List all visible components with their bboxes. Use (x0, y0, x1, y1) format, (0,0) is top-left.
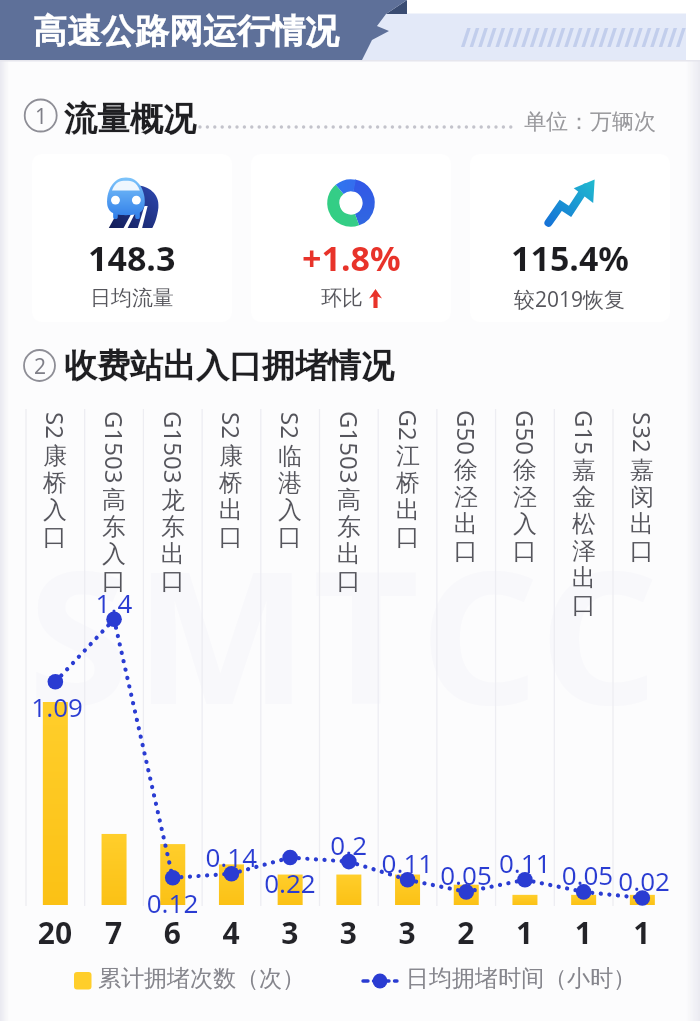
staticText: S2 (274, 412, 307, 439)
staticText: 口 (278, 522, 302, 549)
staticText: 出 (396, 495, 420, 522)
staticText: 日均流量 (90, 285, 174, 311)
button[interactable]: 148.3 (32, 154, 232, 322)
staticText: 较2019恢复 (514, 285, 626, 314)
staticText: 泾 (513, 482, 537, 509)
staticText: 桥 (396, 468, 420, 495)
staticText: 口 (572, 590, 596, 617)
staticText: 泾 (454, 482, 478, 509)
staticText: 港 (278, 468, 302, 495)
staticText: 临 (278, 441, 302, 468)
button[interactable]: 115.4% (470, 154, 670, 322)
staticText: 入 (278, 495, 302, 522)
staticText: 出 (454, 509, 478, 536)
staticText: 金 (572, 482, 596, 509)
staticText: 康 (219, 441, 243, 468)
staticText: 龙 (161, 485, 185, 512)
staticText: 高 (102, 485, 126, 512)
staticText: 东 (337, 512, 361, 539)
staticText: 115.4% (511, 235, 630, 281)
staticText: 出 (572, 563, 596, 590)
staticText: 收费站出入口拥堵情况 (64, 345, 394, 387)
staticText: 环比 (321, 285, 363, 311)
button[interactable]: 累计拥堵次数（次） (74, 963, 292, 999)
staticText: 口 (513, 536, 537, 563)
staticText: 入 (102, 539, 126, 566)
staticText: 嘉 (572, 455, 596, 482)
staticText: 2 (34, 352, 47, 381)
staticText: 徐 (513, 455, 537, 482)
staticText: 入 (513, 509, 537, 536)
staticText: 口 (454, 536, 478, 563)
staticText: 1 (35, 102, 48, 131)
staticText: S2 (39, 412, 72, 439)
staticText: 入 (43, 495, 67, 522)
staticText: S32 (626, 412, 659, 453)
staticText: 东 (161, 512, 185, 539)
staticText: 出 (161, 539, 185, 566)
staticText: G15 (568, 410, 601, 455)
staticText: G2 (391, 409, 424, 441)
staticText: 徐 (454, 455, 478, 482)
staticText: 桥 (219, 468, 243, 495)
staticText: 单位：万辆次 (524, 108, 656, 136)
staticText: 康 (43, 441, 67, 468)
staticText: 嘉 (630, 455, 654, 482)
staticText: 桥 (43, 468, 67, 495)
staticText: +1.8% (302, 235, 401, 281)
staticText: 闵 (630, 482, 654, 509)
staticText: G1503 (333, 411, 366, 484)
staticText: 出 (337, 539, 361, 566)
staticText: 泽 (572, 536, 596, 563)
staticText: S2 (215, 412, 248, 439)
staticText: G50 (509, 410, 542, 455)
staticText: G50 (450, 410, 483, 455)
staticText: 江 (396, 441, 420, 468)
staticText: G1503 (157, 411, 190, 484)
staticText: 口 (43, 522, 67, 549)
staticText: G1503 (98, 411, 131, 484)
button[interactable]: 日均拥堵时间（小时） (363, 963, 623, 999)
staticText: 高速公路网运行情况 (33, 10, 339, 53)
staticText: 流量概况 (64, 98, 196, 140)
staticText: 口 (337, 566, 361, 593)
staticText: 148.3 (88, 235, 176, 281)
staticText: 口 (161, 566, 185, 593)
button[interactable]: +1.8% (251, 154, 451, 322)
staticText: 口 (396, 522, 420, 549)
staticText: 口 (630, 536, 654, 563)
staticText: 出 (630, 509, 654, 536)
staticText: 口 (219, 522, 243, 549)
staticText: 东 (102, 512, 126, 539)
staticText: 高 (337, 485, 361, 512)
staticText: 松 (572, 509, 596, 536)
staticText: 出 (219, 495, 243, 522)
staticText: 口 (102, 566, 126, 593)
